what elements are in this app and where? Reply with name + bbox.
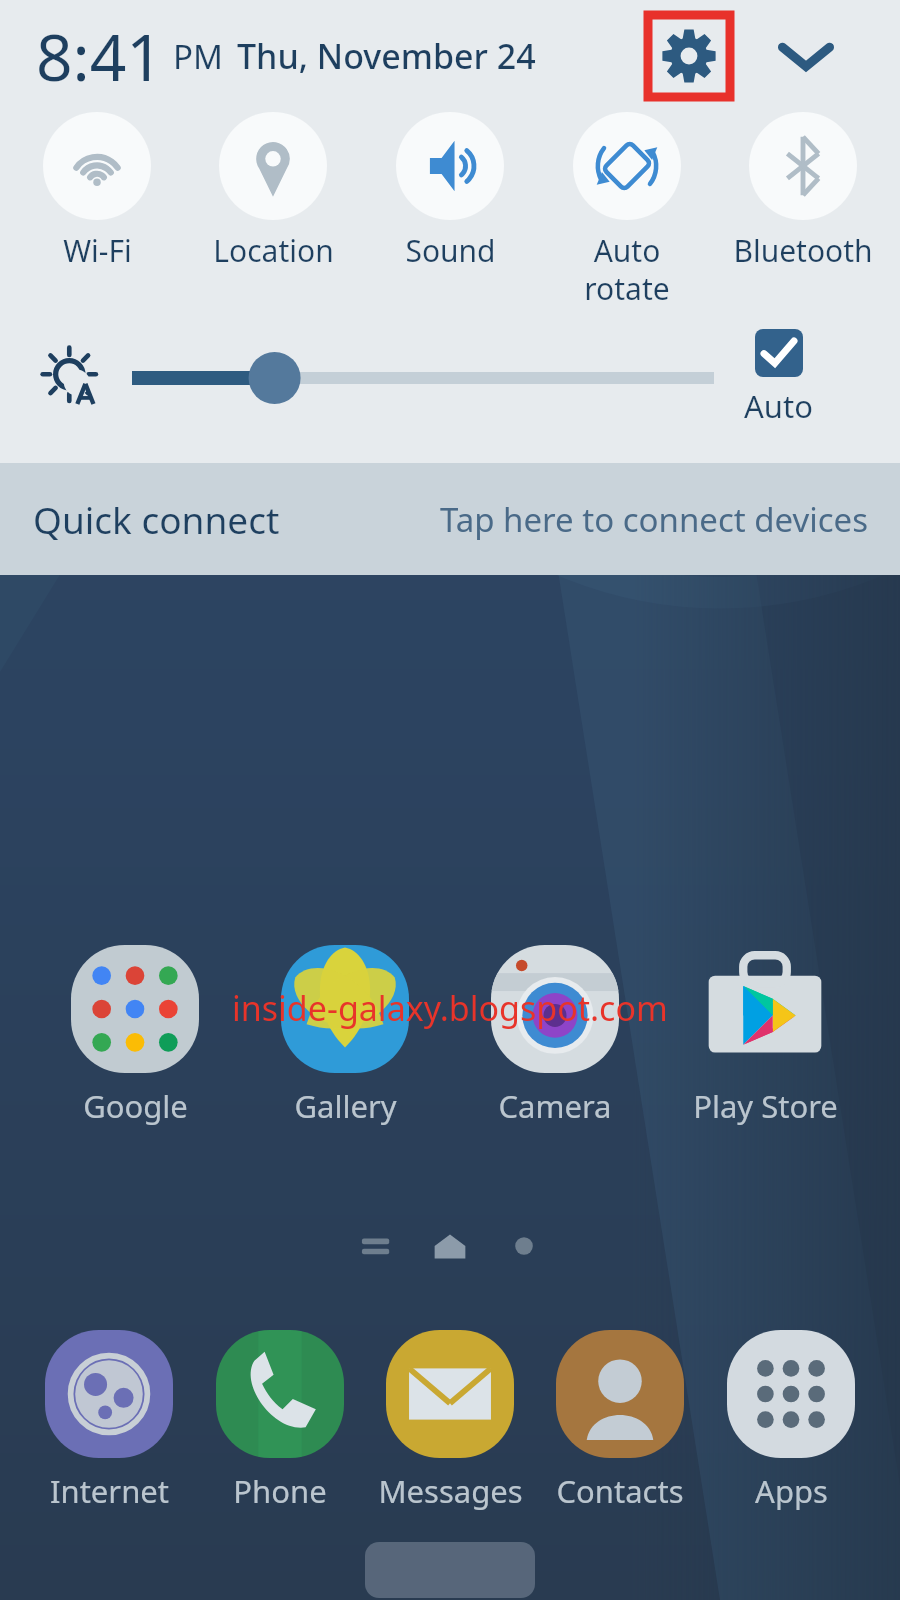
- staticText: Thu, November 24: [237, 33, 536, 79]
- button[interactable]: Google: [60, 945, 210, 1127]
- staticText: Camera: [498, 1085, 612, 1127]
- button[interactable]: Phone: [205, 1330, 355, 1512]
- button[interactable]: Apps: [716, 1330, 866, 1512]
- staticText: Messages: [378, 1470, 523, 1512]
- staticText: Bluetooth: [733, 230, 873, 271]
- button[interactable]: Quick connect: [0, 463, 900, 575]
- staticText: Apps: [755, 1470, 828, 1512]
- button[interactable]: [132, 333, 714, 423]
- staticText: Internet: [50, 1470, 169, 1512]
- staticText: Location: [213, 230, 334, 271]
- button[interactable]: Bluetooth: [723, 112, 883, 271]
- button[interactable]: Internet: [34, 1330, 184, 1512]
- staticText: Google: [83, 1085, 188, 1127]
- staticText: Wi-Fi: [63, 230, 132, 271]
- button[interactable]: Messages: [375, 1330, 525, 1512]
- button[interactable]: Contacts: [545, 1330, 695, 1512]
- button[interactable]: Sound: [370, 112, 530, 271]
- button[interactable]: Camera: [480, 945, 630, 1127]
- staticText: 8:41: [36, 13, 163, 100]
- staticText: Tap here to connect devices: [440, 497, 869, 542]
- button[interactable]: Location: [193, 112, 353, 271]
- staticText: Sound: [405, 230, 496, 271]
- staticText: Contacts: [556, 1470, 684, 1512]
- staticText: Auto: [744, 385, 813, 427]
- button[interactable]: Auto: [744, 329, 813, 427]
- staticText: Phone: [233, 1470, 327, 1512]
- button[interactable]: Gallery: [270, 945, 420, 1127]
- staticText: inside-galaxy.blogspot.com: [232, 985, 668, 1031]
- button[interactable]: Settings: [648, 15, 730, 97]
- staticText: Auto rotate: [584, 230, 670, 309]
- staticText: Gallery: [294, 1085, 397, 1127]
- staticText: Quick connect: [33, 494, 280, 544]
- button[interactable]: Wi-Fi: [17, 112, 177, 271]
- staticText: Play Store: [693, 1085, 838, 1127]
- button[interactable]: Auto rotate: [547, 112, 707, 309]
- button[interactable]: Play Store: [690, 945, 840, 1127]
- button[interactable]: Expand: [765, 15, 847, 97]
- staticText: PM: [173, 34, 223, 79]
